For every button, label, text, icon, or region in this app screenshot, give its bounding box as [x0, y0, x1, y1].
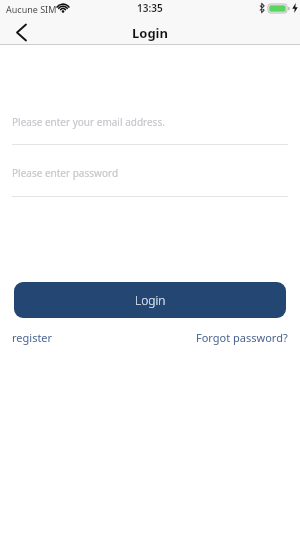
button[interactable]: register: [12, 330, 53, 345]
staticText: 13:35: [137, 1, 163, 15]
staticText: Login: [132, 24, 168, 42]
button[interactable]: [4, 20, 38, 45]
button[interactable]: Please enter password: [12, 162, 288, 197]
staticText: Login: [135, 292, 166, 308]
button[interactable]: Forgot password?: [196, 330, 288, 345]
staticText: Aucune SIM: [6, 3, 57, 15]
staticText: Please enter password: [12, 166, 119, 180]
staticText: Please enter your email address.: [12, 115, 165, 129]
button[interactable]: Please enter your email address.: [12, 110, 288, 145]
button[interactable]: Login: [14, 282, 286, 318]
